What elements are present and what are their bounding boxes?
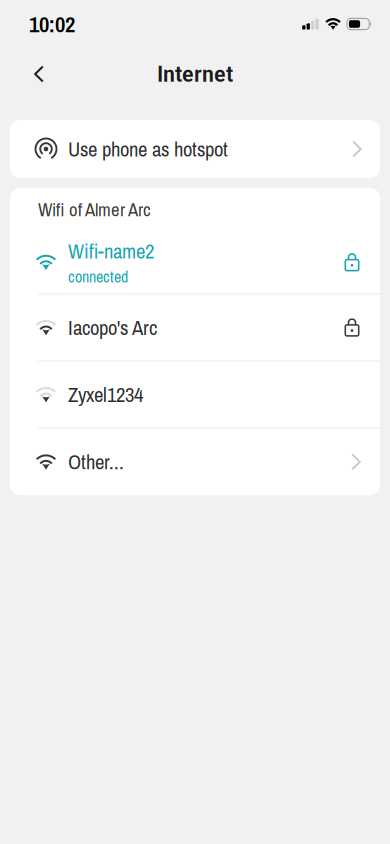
button[interactable]: Zyxel1234: [10, 361, 380, 427]
staticText: Zyxel1234: [68, 381, 143, 408]
staticText: Other...: [68, 448, 124, 476]
staticText: connected: [68, 266, 128, 287]
staticText: Iacopo's Arc: [68, 314, 157, 341]
button[interactable]: Wifi-name2: [10, 231, 380, 293]
staticText: Wifi-name2: [68, 237, 154, 265]
staticText: Wifi of Almer Arc: [38, 197, 151, 222]
button[interactable]: Iacopo's Arc: [10, 294, 380, 360]
button[interactable]: Use phone as hotspot: [10, 120, 380, 178]
button[interactable]: Other...: [10, 428, 380, 495]
staticText: Use phone as hotspot: [68, 135, 228, 163]
staticText: 10:02: [29, 9, 75, 39]
button[interactable]: Back: [17, 52, 61, 96]
staticText: Internet: [157, 61, 233, 87]
